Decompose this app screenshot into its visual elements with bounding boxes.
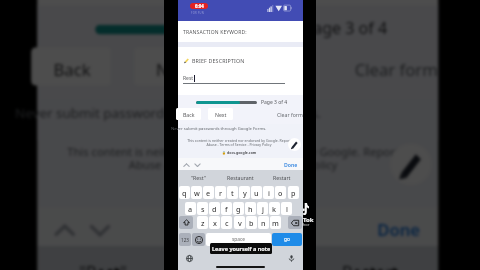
button[interactable]: Clear form (276, 110, 304, 119)
button[interactable]: z (197, 216, 208, 229)
staticText: u (254, 188, 259, 198)
button[interactable]: t (227, 186, 238, 199)
button[interactable]: shift (179, 216, 193, 229)
staticText: n (261, 218, 266, 228)
staticText: Next (156, 57, 195, 79)
button[interactable]: v (234, 216, 245, 229)
staticText: BRIEF DESCRIPTION (192, 57, 245, 64)
button[interactable]: Done (281, 158, 303, 170)
button[interactable]: Back (176, 108, 201, 120)
button[interactable]: "Rest" (178, 170, 219, 185)
staticText: space (232, 236, 245, 243)
button[interactable]: Next (208, 108, 233, 120)
staticText: t (231, 188, 234, 198)
staticText: @author (293, 222, 310, 227)
button[interactable]: j (257, 202, 268, 215)
button[interactable]: l (281, 202, 292, 215)
staticText: Page 3 of 4 (303, 18, 390, 41)
staticText: FOR FUN (191, 11, 204, 15)
button[interactable]: Restart (261, 170, 303, 185)
button[interactable]: go (272, 233, 302, 246)
button[interactable]: a (185, 202, 196, 215)
staticText: s (201, 204, 205, 214)
button[interactable]: y (239, 186, 250, 199)
staticText: 🔒 docs.google.com (25, 182, 441, 198)
staticText: i (268, 188, 270, 198)
staticText: v (238, 218, 242, 228)
button[interactable]: "Rest" (37, 246, 169, 270)
staticText: j (262, 204, 264, 214)
staticText: 123 (181, 237, 189, 243)
staticText: y (243, 188, 247, 198)
staticText: 6:04 (195, 3, 204, 9)
button[interactable]: e (203, 186, 214, 199)
button[interactable]: Change keyboard (186, 255, 193, 262)
button[interactable]: w (191, 186, 202, 199)
button[interactable]: f (221, 202, 232, 215)
button[interactable]: d (209, 202, 220, 215)
button[interactable]: Next field (194, 162, 201, 169)
staticText: e (206, 188, 211, 198)
staticText: b (249, 218, 254, 228)
staticText: Abuse - Terms of Service - Privacy Polic… (25, 156, 441, 172)
button[interactable]: s (197, 202, 208, 215)
staticText: "Rest" (79, 259, 127, 270)
button[interactable]: x (209, 216, 220, 229)
staticText: Page 3 of 4 (261, 99, 288, 106)
button[interactable]: Voice input (288, 255, 295, 262)
staticText: Restart (342, 259, 400, 270)
button[interactable]: Edit (390, 143, 432, 185)
staticText: Done (377, 217, 422, 236)
button[interactable]: p (288, 186, 299, 199)
staticText: h (248, 204, 253, 214)
button[interactable]: r (215, 186, 226, 199)
staticText: Leave yourself a note (212, 245, 271, 253)
staticText: Restart (273, 174, 291, 181)
button[interactable]: m (270, 216, 281, 229)
button[interactable]: del (288, 216, 302, 229)
button[interactable]: Next (134, 47, 214, 86)
button[interactable]: Restaurant (169, 246, 303, 270)
button[interactable]: k (269, 202, 280, 215)
staticText: Clear form (355, 57, 438, 79)
button[interactable]: Previous field (53, 220, 76, 243)
staticText: w (194, 188, 200, 198)
staticText: z (201, 218, 205, 228)
staticText: TikTok (294, 216, 314, 224)
staticText: This content is neither created nor endo… (25, 143, 441, 159)
button[interactable]: Restaurant (219, 170, 261, 185)
staticText: f (225, 204, 228, 214)
button[interactable]: Edit (288, 138, 301, 151)
staticText: Rest (183, 75, 194, 82)
button[interactable]: 123 (179, 233, 191, 246)
staticText: c (225, 218, 229, 228)
button[interactable]: c (221, 216, 232, 229)
button[interactable]: Previous field (183, 162, 190, 169)
staticText: p (291, 188, 296, 198)
button[interactable]: Done (368, 207, 438, 246)
staticText: l (286, 204, 288, 214)
button[interactable]: i (263, 186, 274, 199)
button[interactable]: h (245, 202, 256, 215)
button[interactable]: Next field (89, 220, 111, 243)
staticText: Never submit passwords through Google Fo… (15, 105, 448, 124)
button[interactable]: o (275, 186, 286, 199)
button[interactable]: emoji (192, 233, 205, 246)
button[interactable]: g (233, 202, 244, 215)
staticText: go (284, 236, 290, 243)
button[interactable]: u (251, 186, 262, 199)
staticText: Next (215, 111, 227, 118)
staticText: 🔒 docs.google.com (174, 150, 304, 155)
staticText: r (219, 188, 223, 198)
button[interactable]: Back (31, 47, 111, 86)
button[interactable]: Restart (303, 246, 438, 270)
button[interactable]: space (206, 233, 271, 246)
staticText: Restaurant (227, 174, 254, 181)
button[interactable]: b (246, 216, 257, 229)
staticText: q (182, 188, 187, 198)
button[interactable]: Clear form (352, 54, 441, 82)
staticText: Restaurant (194, 259, 281, 270)
staticText: Back (53, 57, 92, 79)
button[interactable]: q (179, 186, 190, 199)
button[interactable]: n (258, 216, 269, 229)
